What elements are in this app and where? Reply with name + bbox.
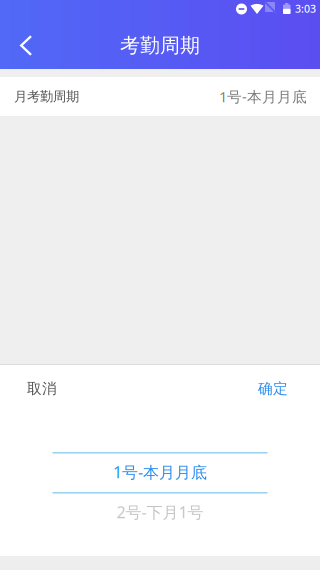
staticText: 3:03 <box>295 1 316 16</box>
button[interactable]: 取消 <box>0 365 71 412</box>
staticText: 考勤周期 <box>120 33 200 58</box>
button[interactable]: 1号-本月月底 <box>0 452 320 492</box>
button[interactable]: 确定 <box>244 365 320 412</box>
staticText: 2号-下月1号 <box>116 501 203 523</box>
staticText: 1号-本月月底 <box>113 461 207 483</box>
staticText: 1号-本月月底 <box>219 87 307 106</box>
staticText: 取消 <box>27 379 57 397</box>
button[interactable]: 月考勤周期 <box>0 77 320 116</box>
staticText: 月考勤周期 <box>14 88 79 105</box>
button[interactable]: Back <box>0 22 48 68</box>
staticText: 确定 <box>258 379 288 397</box>
button[interactable]: 2号-下月1号 <box>0 492 320 532</box>
